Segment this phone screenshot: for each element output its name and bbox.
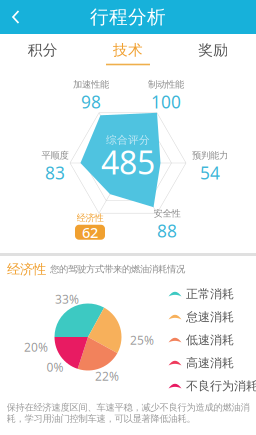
staticText: 62 xyxy=(82,222,98,242)
staticText: 33% xyxy=(55,291,79,307)
staticText: 安全性 xyxy=(153,208,180,219)
staticText: 行程分析 xyxy=(90,5,166,28)
staticText: 平顺度 xyxy=(41,150,68,161)
staticText: 综合评分 xyxy=(106,133,150,146)
staticText: 83 xyxy=(45,161,65,184)
staticText: 不良行为消耗 xyxy=(186,379,256,393)
staticText: 低速消耗 xyxy=(186,333,234,347)
staticText: 正常消耗 xyxy=(186,287,234,301)
staticText: 技术 xyxy=(113,41,143,59)
staticText: 88 xyxy=(157,219,177,242)
staticText: 您的驾驶方式带来的燃油消耗情况 xyxy=(50,263,185,275)
staticText: 经济性 xyxy=(76,212,103,224)
staticText: 积分 xyxy=(28,41,58,59)
staticText: 怠速消耗 xyxy=(186,310,234,324)
staticText: 20% xyxy=(24,339,48,355)
button[interactable]: 奖励 xyxy=(171,34,256,66)
staticText: 制动性能 xyxy=(148,79,184,90)
staticText: 高速消耗 xyxy=(186,356,234,370)
staticText: 98 xyxy=(81,90,101,113)
button[interactable]: Back xyxy=(0,0,38,34)
staticText: 22% xyxy=(95,368,119,384)
staticText: 485 xyxy=(101,141,155,183)
staticText: 奖励 xyxy=(198,41,228,59)
button[interactable]: 技术 xyxy=(85,34,171,66)
staticText: 54 xyxy=(200,161,220,184)
staticText: 加速性能 xyxy=(73,79,109,90)
staticText: 100 xyxy=(151,90,181,113)
staticText: 25% xyxy=(130,332,154,348)
staticText: 预判能力 xyxy=(192,150,228,161)
staticText: 保持在经济速度区间、车速平稳，减少不良行为造成的燃油消耗，学习用油门控制车速，可… xyxy=(6,401,249,424)
button[interactable]: 积分 xyxy=(0,34,85,66)
staticText: 经济性 xyxy=(7,261,46,277)
staticText: 0% xyxy=(46,359,63,375)
